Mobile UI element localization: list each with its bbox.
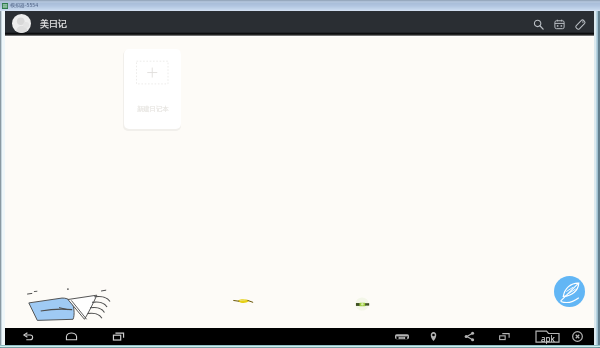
staticText: apk xyxy=(541,333,555,344)
button[interactable]: Tag xyxy=(572,16,588,32)
button[interactable]: Share xyxy=(463,330,476,343)
button[interactable]: Close xyxy=(571,330,584,343)
staticText: 美日记 xyxy=(40,18,67,29)
button[interactable]: Home xyxy=(65,330,78,343)
button[interactable]: Keyboard xyxy=(394,330,409,343)
button[interactable]: New entry xyxy=(554,276,585,307)
button[interactable]: Profile xyxy=(12,14,31,33)
button[interactable]: Install APK xyxy=(535,329,560,344)
button[interactable]: Screenshot xyxy=(498,330,511,343)
staticText: 新建日记本 xyxy=(137,105,169,113)
button[interactable]: 新建日记本 xyxy=(124,49,181,129)
button[interactable]: Recents xyxy=(112,330,125,343)
button[interactable]: Calendar xyxy=(551,16,567,32)
button[interactable]: Back xyxy=(22,330,35,343)
staticText: 模拟器-5554 xyxy=(10,2,39,9)
button[interactable]: Search xyxy=(530,16,546,32)
button[interactable]: Location xyxy=(427,330,440,343)
